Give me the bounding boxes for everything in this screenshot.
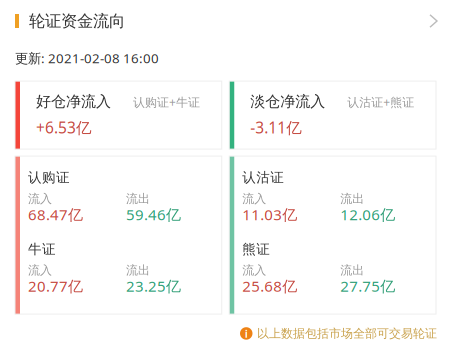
staticText: 流入 xyxy=(242,263,266,278)
staticText: 12.06亿 xyxy=(340,204,395,225)
staticText: 25.68亿 xyxy=(242,276,297,296)
staticText: 以上数据包括市场全部可交易轮证 xyxy=(257,326,437,341)
staticText: 认购证+牛证 xyxy=(133,94,200,110)
staticText: 59.46亿 xyxy=(126,204,181,225)
staticText: 淡仓净流入 xyxy=(250,92,325,111)
staticText: 20.77亿 xyxy=(28,276,83,296)
staticText: 牛证 xyxy=(28,241,56,258)
button[interactable]: 轮证资金流向 xyxy=(0,0,451,42)
staticText: 轮证资金流向 xyxy=(29,11,125,31)
staticText: 23.25亿 xyxy=(126,276,181,296)
staticText: 27.75亿 xyxy=(340,276,395,296)
staticText: -3.11亿 xyxy=(250,117,302,138)
staticText: 68.47亿 xyxy=(28,204,83,225)
staticText: +6.53亿 xyxy=(36,117,92,138)
staticText: 流出 xyxy=(126,191,150,206)
staticText: 流入 xyxy=(242,191,266,206)
staticText: 认购证 xyxy=(28,169,70,186)
staticText: 流入 xyxy=(28,263,52,278)
staticText: 流入 xyxy=(28,191,52,206)
staticText: 流出 xyxy=(340,263,364,278)
staticText: 认沽证 xyxy=(242,169,284,186)
staticText: 好仓净流入 xyxy=(36,92,111,111)
staticText: 流出 xyxy=(126,263,150,278)
staticText: i xyxy=(245,326,248,341)
staticText: 11.03亿 xyxy=(242,204,297,225)
staticText: 熊证 xyxy=(242,241,270,258)
staticText: 认沽证+熊证 xyxy=(347,94,414,110)
staticText: 更新: 2021-02-08 16:00 xyxy=(15,49,159,67)
staticText: 流出 xyxy=(340,191,364,206)
